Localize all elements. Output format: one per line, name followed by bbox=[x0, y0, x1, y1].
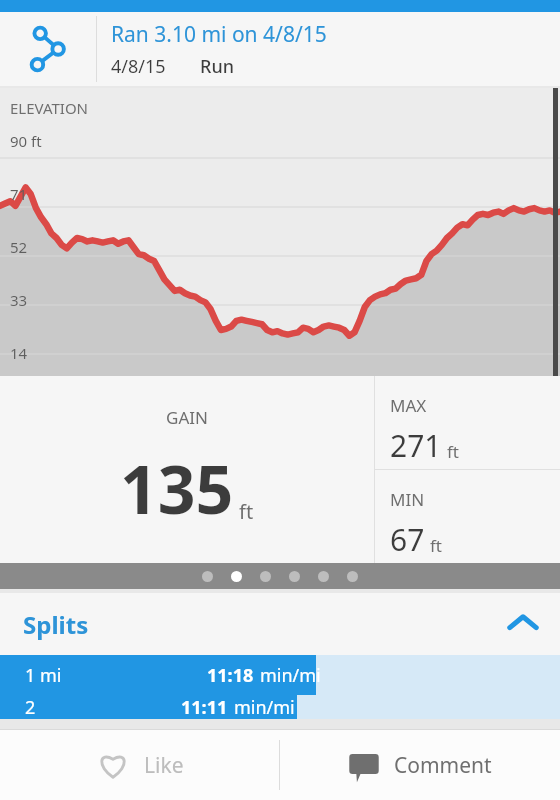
staticText: ft bbox=[430, 534, 442, 557]
staticText: 1 mi bbox=[25, 663, 62, 688]
button[interactable] bbox=[202, 571, 213, 582]
staticText: GAIN bbox=[166, 406, 208, 429]
button[interactable] bbox=[231, 571, 242, 582]
staticText: 90 ft bbox=[10, 131, 42, 151]
staticText: 11:11 bbox=[181, 695, 228, 719]
staticText: ELEVATION bbox=[10, 98, 89, 118]
button[interactable] bbox=[289, 571, 300, 582]
staticText: 11:18 bbox=[207, 663, 254, 688]
staticText: 4/8/15 bbox=[111, 54, 166, 79]
other: Route bbox=[0, 12, 96, 86]
button[interactable] bbox=[318, 571, 329, 582]
button[interactable]: 1 mi bbox=[0, 655, 560, 695]
button[interactable]: Like bbox=[0, 730, 279, 800]
staticText: 14 bbox=[10, 343, 28, 363]
staticText: 2 bbox=[25, 695, 36, 719]
staticText: Like bbox=[144, 751, 184, 780]
button[interactable] bbox=[260, 571, 271, 582]
staticText: MAX bbox=[390, 394, 427, 417]
staticText: min/mi bbox=[234, 695, 295, 719]
button[interactable]: MIN bbox=[375, 470, 560, 563]
button[interactable]: Comment bbox=[280, 730, 560, 800]
button[interactable]: GAIN bbox=[0, 376, 374, 563]
button[interactable]: Splits bbox=[0, 593, 560, 655]
staticText: MIN bbox=[390, 488, 425, 511]
staticText: ft bbox=[447, 440, 459, 463]
staticText: min/mi bbox=[260, 663, 321, 688]
button[interactable]: Route bbox=[0, 12, 560, 86]
button[interactable] bbox=[347, 571, 358, 582]
button[interactable]: 2 bbox=[0, 695, 560, 719]
other: Collapse bbox=[506, 607, 540, 641]
staticText: 271 bbox=[390, 425, 442, 466]
staticText: 135 bbox=[120, 443, 234, 533]
staticText: Splits bbox=[23, 608, 89, 641]
staticText: Comment bbox=[394, 751, 492, 780]
staticText: 67 bbox=[390, 519, 425, 560]
button[interactable]: MAX bbox=[375, 376, 560, 469]
staticText: 71 bbox=[10, 184, 28, 204]
staticText: Run bbox=[200, 54, 234, 79]
staticText: 33 bbox=[10, 290, 28, 310]
staticText: ft bbox=[239, 498, 254, 525]
staticText: 52 bbox=[10, 237, 28, 257]
staticText: Ran 3.10 mi on 4/8/15 bbox=[111, 20, 327, 49]
